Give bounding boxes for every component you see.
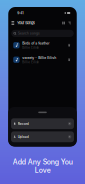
- staticText: Billie Eilish: [22, 60, 39, 64]
- staticText: Upload: [18, 135, 29, 139]
- staticText: Record: [18, 122, 29, 126]
- staticText: Add Any Song You Love: [12, 158, 72, 174]
- button[interactable]: Record: [11, 118, 74, 129]
- button[interactable]: sweety - Billie Eilish: [8, 52, 77, 67]
- staticText: Your Songs: [17, 21, 35, 25]
- button[interactable]: Layout: [61, 21, 65, 25]
- staticText: Search songs: [18, 31, 40, 35]
- button[interactable]: Menu: [11, 21, 15, 25]
- staticText: Billie Eilish: [22, 46, 39, 49]
- button[interactable]: Sort: [65, 21, 71, 25]
- staticText: Birds of a feather: [22, 41, 49, 45]
- button[interactable]: Birds of a feather: [8, 38, 77, 52]
- staticText: sweety - Billie Eilish: [22, 56, 56, 60]
- button[interactable]: Search songs: [8, 30, 77, 37]
- button[interactable]: Upload: [11, 131, 74, 142]
- staticText: 9:41: [17, 11, 23, 15]
